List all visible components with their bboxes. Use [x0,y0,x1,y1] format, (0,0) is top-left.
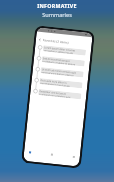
button[interactable]: Back [38,38,42,42]
button[interactable]: Ut enim ad minim veniam quis [32,63,89,80]
button[interactable]: Search [49,151,55,158]
staticText: cupidatat non proident sunt [39,92,71,98]
button[interactable]: Sed do eiusmod tempor [33,52,90,69]
staticText: consectetur adipiscing elit [44,48,74,54]
button[interactable]: Excepteur sint occaecat [30,85,87,102]
staticText: nostrud exercitation ullamco [41,70,74,77]
staticText: Ut enim ad minim veniam quis [42,67,77,74]
staticText: Favorites (2 items) [43,38,69,45]
button[interactable]: Profile [70,154,77,160]
staticText: Lorem ipsum dolor sit amet [44,45,76,52]
staticText: Duis aute irure dolor in [41,78,67,84]
staticText: INFORMATIVE [37,2,77,9]
staticText: Excepteur sint occaecat [39,89,67,95]
staticText: Sed do eiusmod tempor [43,56,71,62]
button[interactable]: Duis aute irure dolor in [31,74,88,91]
staticText: reprehenderit in voluptate [40,81,70,87]
button[interactable]: Home [27,149,33,156]
button[interactable]: Lorem ipsum dolor sit amet [34,41,91,58]
staticText: incididunt ut labore et dolore [43,59,76,66]
staticText: Summaries [42,11,72,19]
